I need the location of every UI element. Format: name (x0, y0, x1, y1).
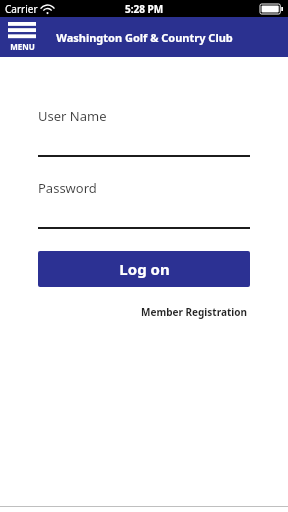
staticText: User Name (38, 107, 107, 125)
staticText: Member Registration (141, 305, 248, 319)
staticText: Password (38, 179, 97, 197)
button[interactable]: Member Registration (139, 304, 250, 320)
button[interactable]: Log on (38, 251, 250, 287)
button[interactable]: Menu (6, 22, 38, 52)
staticText: 5:28 PM (125, 2, 164, 16)
staticText: Carrier (5, 2, 38, 16)
staticText: Log on (119, 259, 170, 279)
button[interactable]: User Name (38, 107, 250, 157)
staticText: MENU (10, 41, 35, 52)
button[interactable]: Password (38, 179, 250, 229)
staticText: Washington Golf & Country Club (56, 30, 233, 45)
